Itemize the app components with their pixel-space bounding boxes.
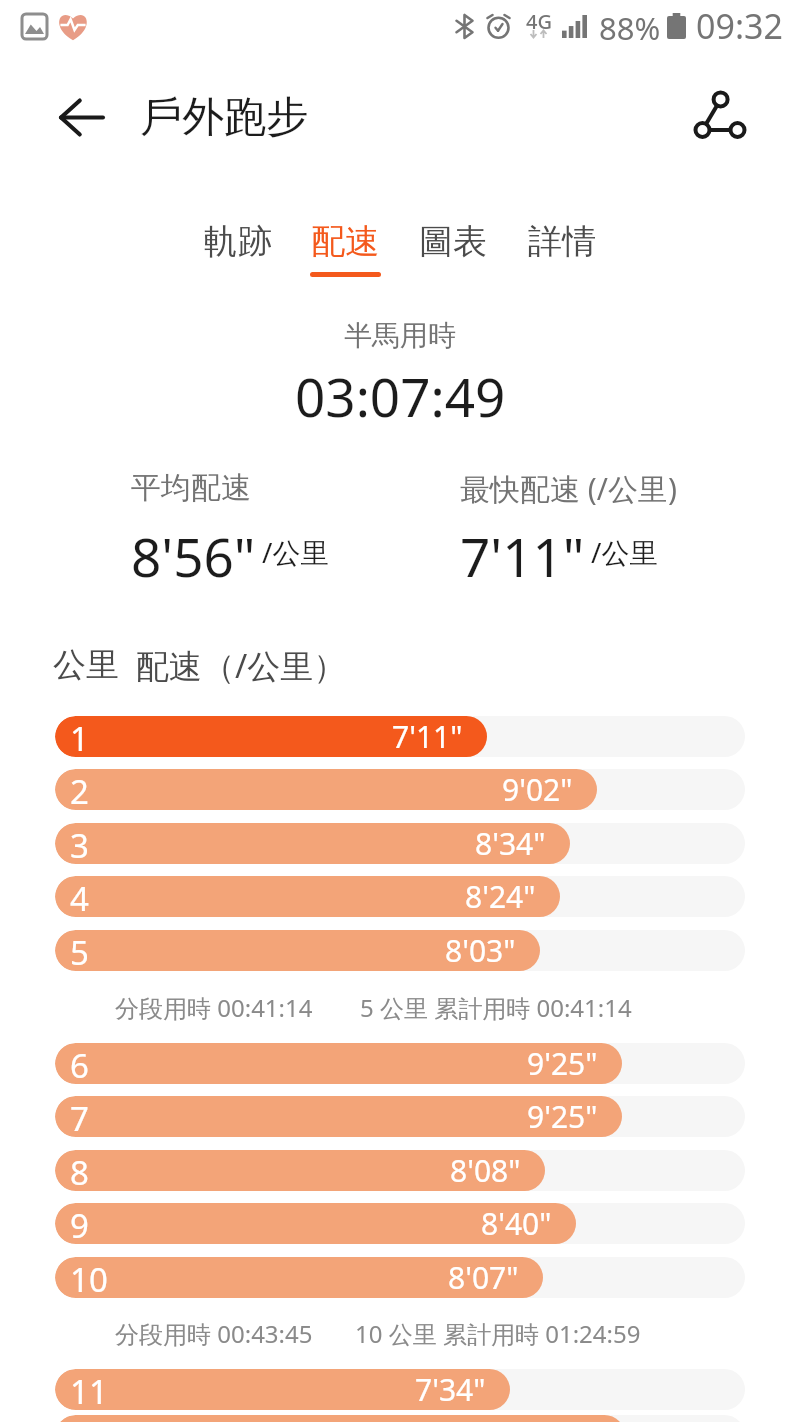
staticText: 9 — [70, 1203, 89, 1244]
staticText: 2 — [70, 769, 89, 810]
staticText: 10 — [70, 1257, 108, 1298]
staticText: 3 — [70, 823, 89, 864]
staticText: 平均配速 — [131, 469, 251, 507]
staticText: 軌跡 — [204, 220, 272, 263]
button[interactable]: 10 — [55, 1257, 745, 1298]
staticText: 分段用時 00:41:14 — [115, 991, 313, 1024]
staticText: 9'25" — [527, 1043, 598, 1084]
staticText: 圖表 — [419, 220, 487, 263]
staticText: 配速（/公里） — [136, 643, 347, 688]
staticText: 12 — [70, 1415, 108, 1422]
staticText: 7'34" — [415, 1369, 486, 1410]
staticText: 8'24" — [465, 876, 536, 917]
staticText: 7'11" — [392, 716, 463, 757]
staticText: 8'34" — [475, 823, 546, 864]
staticText: 8 — [70, 1150, 89, 1191]
button[interactable]: 11 — [55, 1369, 745, 1410]
button[interactable]: 6 — [55, 1043, 745, 1084]
staticText: 7 — [70, 1096, 89, 1137]
button[interactable]: 圖表 — [399, 218, 507, 280]
staticText: 88% — [599, 7, 661, 49]
button[interactable]: 9 — [55, 1203, 745, 1244]
staticText: 9'25" — [527, 1096, 598, 1137]
staticText: 11 — [70, 1369, 108, 1410]
staticText: 詳情 — [528, 220, 596, 263]
staticText: 公里 — [53, 644, 119, 686]
staticText: 10 公里 累計用時 01:24:59 — [355, 1317, 641, 1350]
staticText: 戶外跑步 — [140, 91, 308, 144]
button[interactable]: 12 — [55, 1415, 745, 1422]
staticText: /公里 — [262, 533, 329, 571]
button[interactable]: 4 — [55, 876, 745, 917]
staticText: 4G — [526, 8, 552, 35]
button[interactable] — [60, 99, 104, 136]
button[interactable]: 軌跡 — [184, 218, 292, 280]
staticText: 03:07:49 — [295, 360, 506, 432]
staticText: 5 公里 累計用時 00:41:14 — [360, 991, 632, 1024]
staticText: 8'40" — [481, 1203, 552, 1244]
staticText: 8'08" — [450, 1150, 521, 1191]
staticText: 8'07" — [448, 1257, 519, 1298]
staticText: 配速 — [311, 220, 379, 263]
staticText: 8'56" — [131, 520, 256, 578]
button[interactable]: 7 — [55, 1096, 745, 1137]
button[interactable]: 詳情 — [508, 218, 616, 280]
staticText: 8'03" — [445, 930, 516, 971]
button[interactable]: 5 — [55, 930, 745, 971]
staticText: /公里 — [591, 533, 658, 571]
staticText: 6 — [70, 1043, 89, 1084]
button[interactable]: 配速 — [291, 218, 399, 280]
staticText: 1 — [70, 716, 89, 757]
button[interactable]: 3 — [55, 823, 745, 864]
staticText: 最快配速 (/公里) — [460, 468, 677, 509]
staticText: 半馬用時 — [344, 318, 456, 353]
staticText: 09:32 — [696, 3, 783, 49]
staticText: 4 — [70, 876, 89, 917]
button[interactable] — [695, 92, 745, 138]
staticText: 7'11" — [460, 520, 585, 578]
button[interactable]: 1 — [55, 716, 745, 757]
staticText: 分段用時 00:43:45 — [115, 1317, 313, 1350]
button[interactable]: 8 — [55, 1150, 745, 1191]
staticText: 5 — [70, 930, 89, 971]
button[interactable]: 2 — [55, 769, 745, 810]
staticText: 9'02" — [502, 769, 573, 810]
